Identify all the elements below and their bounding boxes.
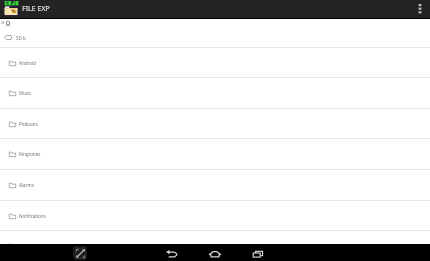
staticText: Android (19, 60, 36, 66)
staticText: FILE EXP (22, 3, 50, 13)
button[interactable]: Switch input method (73, 246, 87, 260)
staticText: > (1, 18, 5, 27)
staticText: Pictures (19, 243, 36, 249)
button[interactable]: Back (160, 244, 184, 261)
button[interactable]: More options (412, 0, 428, 16)
button[interactable]: > (0, 19, 430, 28)
button[interactable]: SD b (0, 28, 430, 47)
button[interactable]: Alarms (0, 170, 430, 200)
button[interactable]: Notifications (0, 201, 430, 230)
button[interactable]: Pictures (0, 231, 430, 261)
staticText: Ringtones (19, 151, 41, 157)
button[interactable]: Android (0, 48, 430, 77)
button[interactable]: Podcasts (0, 109, 430, 138)
staticText: Podcasts (19, 121, 38, 127)
staticText: Notifications (19, 213, 46, 219)
button[interactable]: Ringtones (0, 139, 430, 169)
button[interactable]: Recent apps (246, 244, 270, 261)
staticText: SD b (16, 35, 26, 41)
staticText: Alarms (19, 182, 34, 188)
button[interactable]: Home (203, 244, 227, 261)
button[interactable]: Music (0, 78, 430, 108)
staticText: Music (19, 90, 32, 96)
